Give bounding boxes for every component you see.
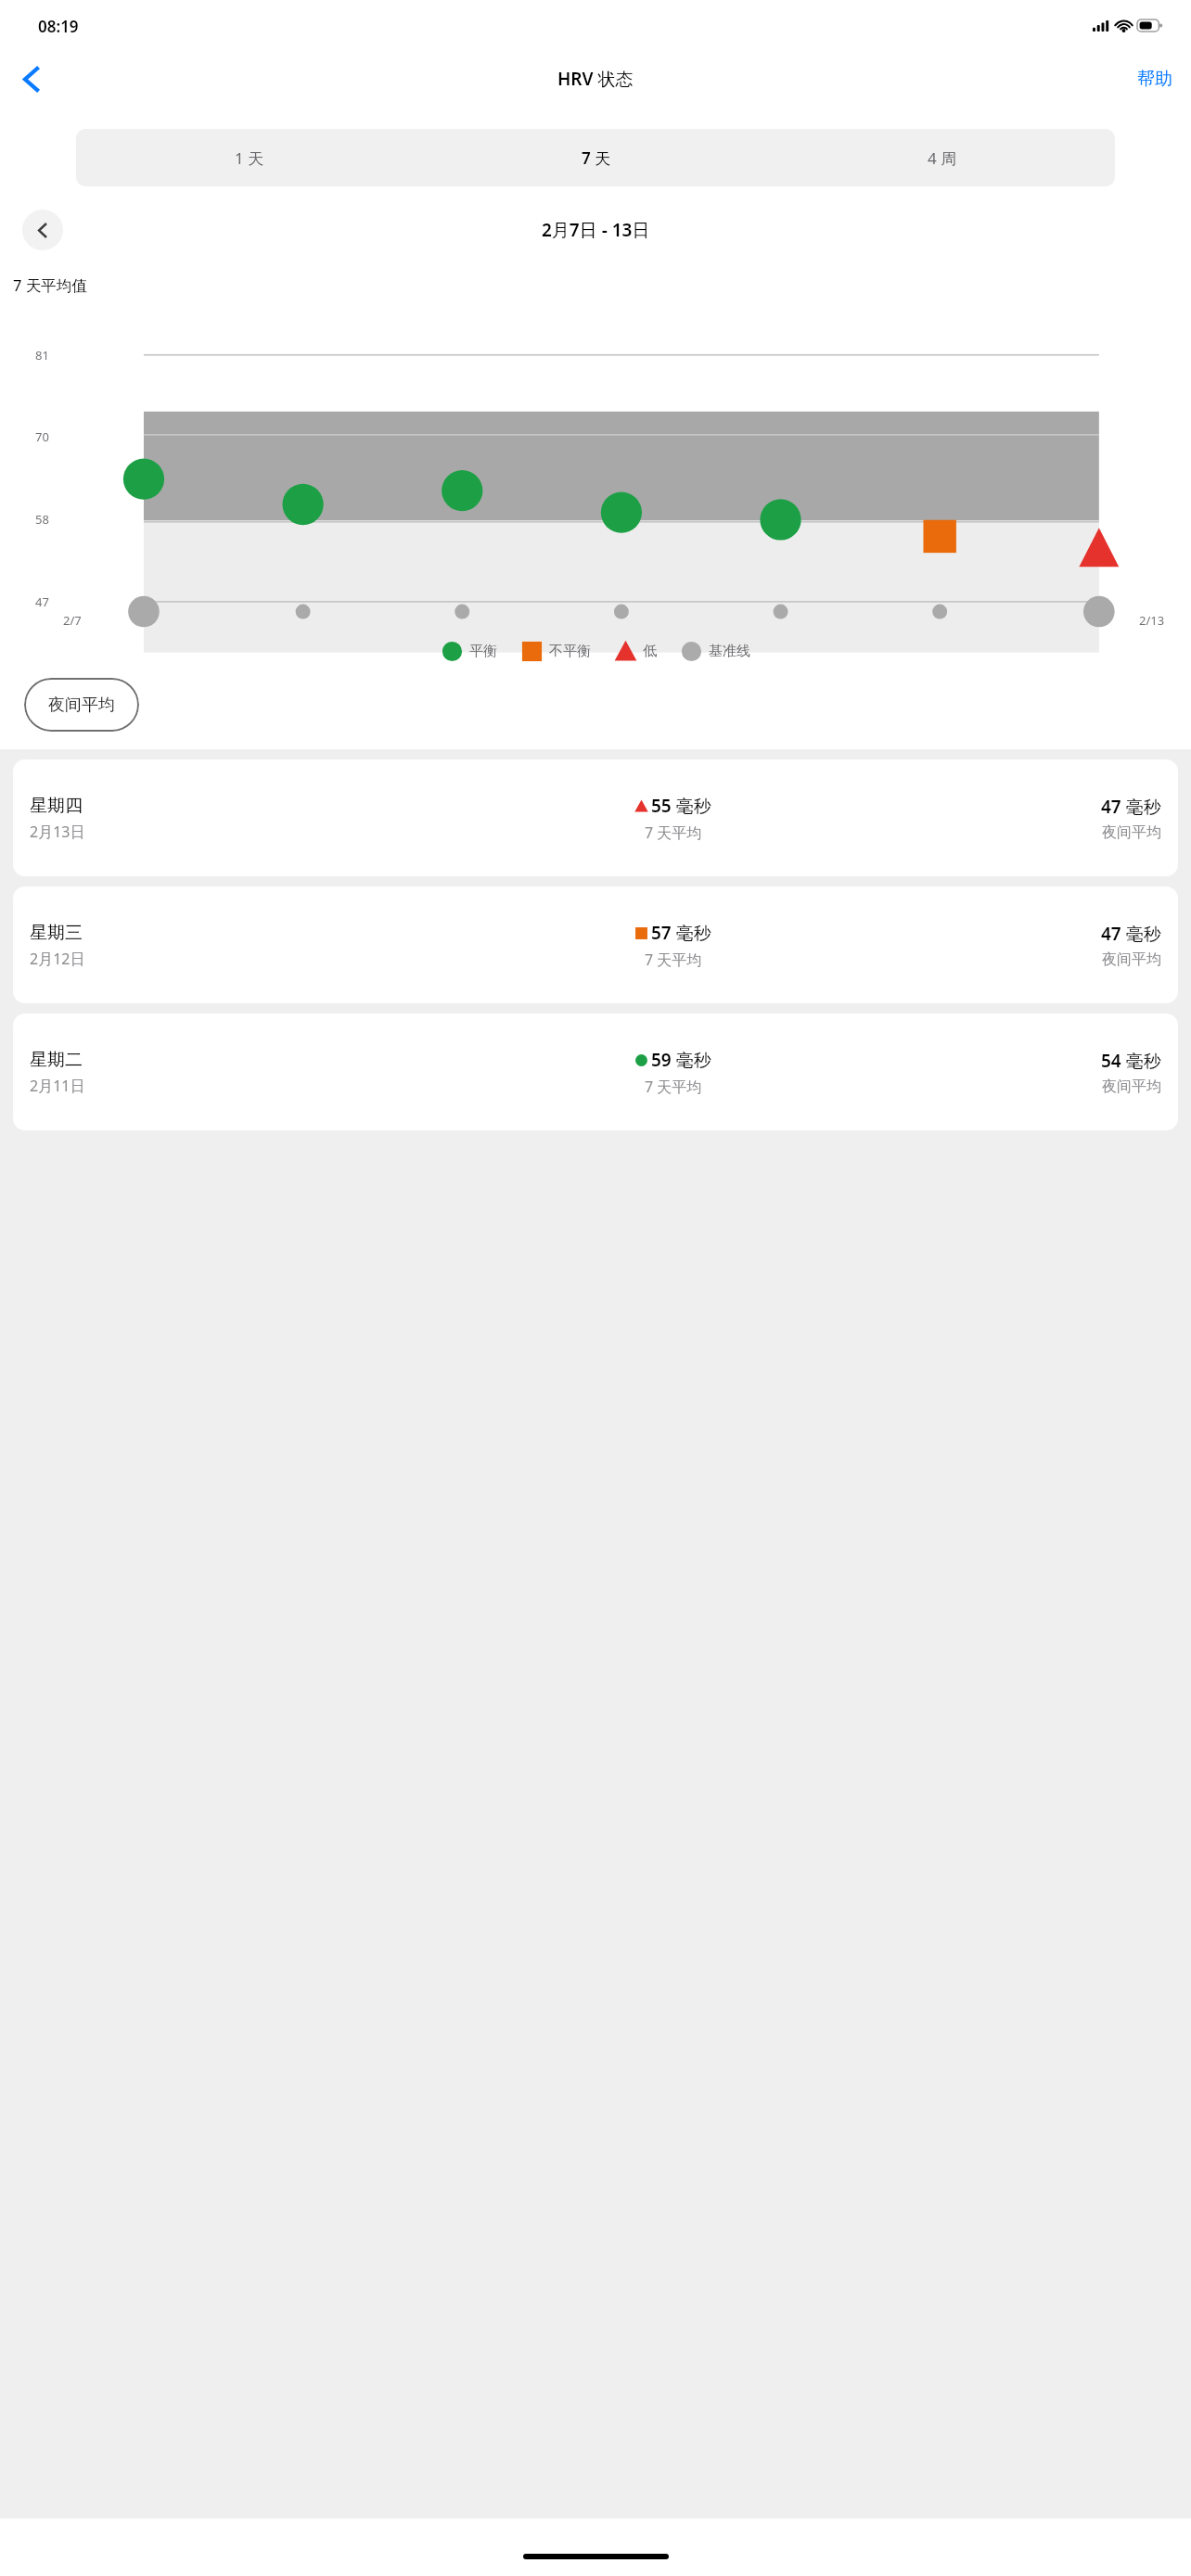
staticText: 58 — [35, 511, 49, 528]
staticText: 81 — [35, 347, 49, 363]
staticText: 7 天平均 — [645, 950, 702, 970]
staticText: 7 天平均 — [645, 1077, 702, 1097]
button[interactable]: 7 天 — [423, 129, 769, 186]
staticText: 7 天平均 — [645, 823, 702, 843]
staticText: 57 毫秒 — [651, 921, 711, 945]
button[interactable]: 4 周 — [769, 129, 1115, 186]
staticText: 星期二 — [30, 1049, 83, 1071]
staticText: 基准线 — [709, 643, 750, 660]
staticText: 星期四 — [30, 795, 83, 817]
staticText: 1 天 — [235, 147, 264, 169]
staticText: 不平衡 — [549, 643, 591, 660]
button[interactable]: 1 天 — [76, 129, 423, 186]
staticText: 2月11日 — [30, 1076, 85, 1096]
staticText: 47 — [35, 593, 49, 610]
staticText: 59 毫秒 — [651, 1048, 711, 1072]
staticText: 7 天平均值 — [13, 274, 87, 296]
staticText: 55 毫秒 — [651, 794, 711, 818]
staticText: 47 毫秒 — [1101, 795, 1161, 819]
staticText: 54 毫秒 — [1101, 1049, 1161, 1073]
button[interactable]: 星期二 — [13, 1014, 1178, 1130]
staticText: 夜间平均 — [1102, 823, 1161, 842]
button[interactable]: 星期四 — [13, 759, 1178, 876]
button[interactable]: 帮助 — [1130, 58, 1180, 99]
staticText: 夜间平均 — [48, 695, 115, 716]
staticText: 2月7日 - 13日 — [542, 218, 650, 242]
staticText: 帮助 — [1137, 68, 1172, 90]
staticText: 夜间平均 — [1102, 1078, 1161, 1096]
staticText: 夜间平均 — [1102, 950, 1161, 969]
button[interactable]: 夜间平均 — [24, 678, 139, 732]
staticText: 2月13日 — [30, 822, 85, 842]
staticText: HRV 状态 — [557, 67, 634, 91]
button[interactable]: 星期三 — [13, 886, 1178, 1003]
button[interactable]: 上一周 — [22, 210, 63, 250]
staticText: 7 天 — [582, 147, 611, 169]
staticText: 平衡 — [469, 643, 497, 660]
staticText: 低 — [643, 643, 657, 660]
staticText: 47 毫秒 — [1101, 922, 1161, 946]
staticText: 2/13 — [1139, 612, 1165, 629]
staticText: 2月12日 — [30, 949, 85, 969]
staticText: 70 — [35, 428, 49, 445]
staticText: 星期三 — [30, 922, 83, 944]
staticText: 08:19 — [38, 16, 79, 37]
button[interactable]: 返回 — [7, 56, 54, 102]
staticText: 2/7 — [63, 612, 82, 629]
staticText: 4 周 — [928, 147, 957, 169]
